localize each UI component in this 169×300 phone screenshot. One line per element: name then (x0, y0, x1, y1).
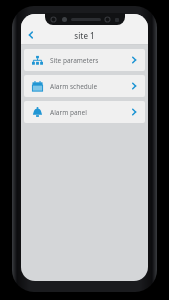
staticText: Alarm schedule (50, 82, 98, 91)
button[interactable]: Alarm schedule (24, 75, 145, 97)
staticText: site 1 (74, 30, 95, 41)
staticText: Site parameters (50, 56, 99, 65)
staticText: Alarm panel (50, 108, 87, 117)
button[interactable]: Site parameters (24, 49, 145, 71)
button[interactable]: Alarm panel (24, 101, 145, 123)
button[interactable]: Back (21, 26, 41, 44)
